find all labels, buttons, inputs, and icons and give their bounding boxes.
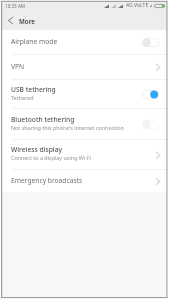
staticText: USB tethering — [11, 85, 56, 94]
staticText: More — [19, 17, 36, 25]
staticText: Connect to a display using Wi-Fi — [11, 154, 92, 161]
staticText: Not sharing this phone's internet connec… — [11, 124, 124, 131]
staticText: Emergency broadcasts — [11, 176, 83, 185]
button[interactable]: Wireless display — [0, 140, 169, 170]
staticText: Tethered — [11, 94, 34, 101]
staticText: Bluetooth tethering — [11, 115, 75, 124]
staticText: 10:33 AM — [5, 3, 26, 9]
button[interactable]: Airplane mode — [0, 30, 169, 55]
staticText: Wireless display — [11, 145, 63, 154]
staticText: 4G VoLTE — [126, 2, 149, 9]
button[interactable]: Bluetooth tethering — [0, 109, 169, 140]
button[interactable]: Back — [0, 11, 20, 30]
staticText: VPN — [11, 62, 25, 71]
button[interactable]: Emergency broadcasts — [0, 170, 169, 192]
button[interactable]: VPN — [0, 55, 169, 80]
staticText: Airplane mode — [11, 37, 58, 46]
button[interactable]: USB tethering — [0, 80, 169, 109]
